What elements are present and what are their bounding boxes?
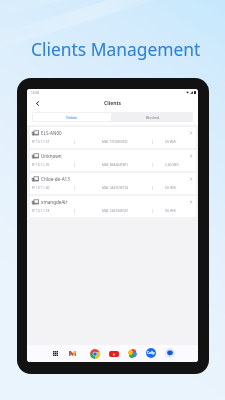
staticText: xmangdeAir bbox=[41, 199, 68, 205]
staticText: Cally bbox=[147, 351, 155, 355]
button[interactable]: All apps bbox=[51, 349, 60, 358]
staticText: MAC C4E3945CB1 bbox=[102, 209, 129, 213]
button[interactable]: Back bbox=[32, 98, 43, 109]
button[interactable]: Chloe-de-A13 bbox=[30, 173, 196, 194]
staticText: MAC B6A4E4F861 bbox=[102, 163, 129, 167]
staticText: MAC 3A20C9E742 bbox=[102, 186, 129, 190]
staticText: 12:30 bbox=[31, 91, 39, 95]
button[interactable]: Calendar bbox=[146, 348, 156, 358]
button[interactable]: YouTube bbox=[108, 348, 119, 359]
staticText: 5G WiFi bbox=[165, 140, 177, 144]
staticText: MAC F7D28E0F2C bbox=[102, 140, 129, 144]
staticText: ELS-AN00 bbox=[41, 130, 62, 136]
button[interactable]: Unknown bbox=[30, 150, 196, 171]
button[interactable]: Google Photos bbox=[127, 348, 138, 359]
staticText: 2.4G WiFi bbox=[165, 163, 179, 167]
button[interactable]: Gmail bbox=[68, 349, 77, 358]
button[interactable]: Chrome bbox=[89, 348, 100, 359]
staticText: Clients Management bbox=[31, 37, 201, 61]
staticText: Unknown bbox=[41, 153, 62, 159]
staticText: 5G WiFi bbox=[165, 209, 177, 213]
button[interactable]: ELS-AN00 bbox=[30, 127, 196, 148]
staticText: Blocked bbox=[146, 115, 160, 120]
button[interactable]: Blocked bbox=[113, 113, 192, 121]
staticText: Online bbox=[66, 115, 78, 120]
button[interactable]: Online bbox=[33, 113, 111, 121]
button[interactable]: Messages bbox=[165, 348, 175, 358]
staticText: IP 10.1.1.18 bbox=[32, 209, 50, 213]
button[interactable]: xmangdeAir bbox=[30, 196, 196, 217]
staticText: 5G WiFi bbox=[165, 186, 177, 190]
staticText: IP 10.1.1.40 bbox=[32, 186, 50, 190]
staticText: Chloe-de-A13 bbox=[41, 176, 70, 182]
staticText: IP 10.1.1.57 bbox=[32, 140, 50, 144]
staticText: IP 10.1.1.35 bbox=[32, 163, 50, 167]
staticText: Clients bbox=[104, 100, 122, 107]
